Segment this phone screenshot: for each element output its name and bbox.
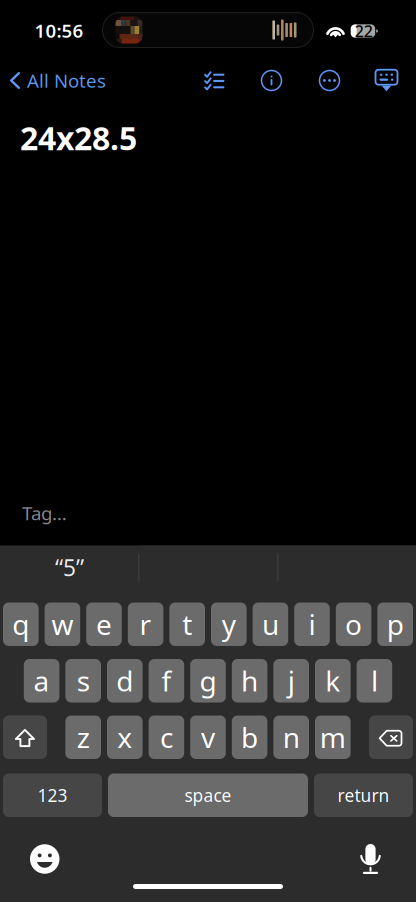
button[interactable]: f bbox=[149, 659, 184, 702]
button[interactable]: x bbox=[107, 715, 143, 759]
button[interactable]: v bbox=[190, 715, 226, 759]
button[interactable]: Checklist bbox=[195, 62, 233, 98]
staticText: 22 bbox=[355, 20, 373, 42]
button[interactable]: Dictation bbox=[351, 835, 390, 883]
staticText: c bbox=[160, 719, 173, 756]
button[interactable]: n bbox=[273, 715, 309, 759]
button[interactable]: space bbox=[108, 773, 308, 817]
staticText: t bbox=[182, 606, 192, 643]
staticText: 10:56 bbox=[34, 18, 83, 43]
button[interactable]: Shift bbox=[3, 715, 47, 759]
button[interactable]: “5” bbox=[0, 545, 138, 589]
button[interactable]: m bbox=[315, 715, 351, 759]
staticText: k bbox=[325, 662, 340, 699]
staticText: u bbox=[262, 606, 279, 643]
button[interactable]: b bbox=[232, 715, 267, 759]
staticText: x bbox=[117, 719, 132, 756]
button[interactable]: a bbox=[24, 659, 59, 702]
button[interactable]: More bbox=[310, 61, 348, 99]
staticText: a bbox=[34, 662, 50, 699]
staticText: l bbox=[371, 662, 378, 699]
button[interactable]: r bbox=[128, 602, 163, 646]
staticText: i bbox=[308, 606, 315, 643]
button[interactable]: t bbox=[169, 602, 205, 646]
staticText: p bbox=[387, 606, 404, 643]
button[interactable]: p bbox=[377, 602, 413, 646]
button[interactable]: u bbox=[253, 602, 288, 646]
button[interactable]: c bbox=[149, 715, 184, 759]
button[interactable]: h bbox=[232, 659, 267, 702]
button[interactable]: o bbox=[336, 602, 371, 646]
staticText: f bbox=[161, 662, 171, 699]
button[interactable]: s bbox=[65, 659, 101, 702]
button[interactable]: q bbox=[3, 602, 39, 646]
staticText: q bbox=[12, 606, 29, 643]
staticText: n bbox=[283, 719, 300, 756]
button[interactable]: e bbox=[86, 602, 122, 646]
staticText: d bbox=[116, 662, 133, 699]
button[interactable]: k bbox=[315, 659, 351, 702]
staticText: j bbox=[288, 662, 295, 699]
staticText: w bbox=[51, 606, 73, 643]
staticText: y bbox=[222, 606, 236, 643]
button[interactable]: w bbox=[45, 602, 80, 646]
staticText: 24x28.5 bbox=[20, 116, 137, 159]
staticText: o bbox=[345, 606, 362, 643]
button[interactable]: All Notes bbox=[0, 60, 112, 101]
button[interactable]: Info bbox=[252, 61, 290, 99]
staticText: e bbox=[96, 606, 112, 643]
button[interactable]: i bbox=[294, 602, 330, 646]
staticText: v bbox=[201, 719, 215, 756]
staticText: s bbox=[77, 662, 90, 699]
staticText: All Notes bbox=[27, 68, 106, 93]
staticText: 123 bbox=[37, 784, 67, 807]
staticText: z bbox=[77, 719, 90, 756]
button[interactable]: l bbox=[357, 659, 392, 702]
button[interactable]: return bbox=[314, 773, 413, 817]
button[interactable]: Hide Keyboard bbox=[368, 64, 405, 96]
button[interactable]: Emoji bbox=[21, 835, 68, 883]
staticText: h bbox=[241, 662, 258, 699]
button[interactable]: 123 bbox=[3, 773, 102, 817]
staticText: g bbox=[199, 662, 216, 699]
button[interactable]: z bbox=[65, 715, 101, 759]
staticText: “5” bbox=[55, 552, 84, 582]
button[interactable]: d bbox=[107, 659, 143, 702]
staticText: b bbox=[241, 719, 258, 756]
staticText: r bbox=[140, 606, 152, 643]
button[interactable]: g bbox=[190, 659, 226, 702]
button[interactable]: y bbox=[211, 602, 247, 646]
staticText: return bbox=[337, 784, 389, 807]
staticText: m bbox=[320, 719, 346, 756]
staticText: space bbox=[184, 784, 231, 807]
button[interactable]: j bbox=[273, 659, 309, 702]
staticText: Tag… bbox=[22, 501, 67, 525]
button[interactable]: Delete bbox=[369, 715, 413, 759]
